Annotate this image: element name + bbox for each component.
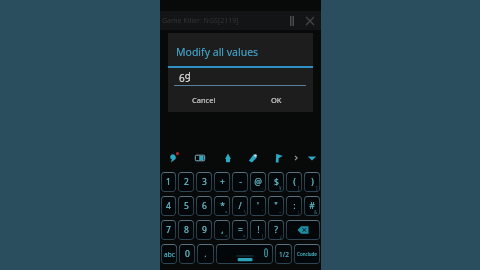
staticText: : — [293, 200, 296, 212]
button[interactable]: Pause — [284, 13, 300, 29]
button[interactable]: [ — [286, 172, 302, 192]
staticText: 0 — [185, 248, 190, 260]
staticText: / — [238, 200, 242, 212]
button[interactable]: Cancel — [168, 93, 240, 107]
staticText: & — [314, 209, 318, 215]
button[interactable]: \ — [232, 196, 248, 216]
staticText: ¿ — [280, 233, 282, 239]
button[interactable]: 1/2 — [275, 244, 292, 264]
staticText: 69 — [179, 71, 191, 85]
button[interactable]: Voice input — [166, 146, 179, 170]
button[interactable]: 9 — [196, 220, 212, 240]
staticText: 2 — [184, 176, 189, 188]
staticText: ) — [311, 176, 314, 188]
staticText: Modify all values — [176, 45, 259, 59]
staticText: = — [238, 224, 243, 236]
staticText: < — [225, 233, 228, 239]
staticText: | — [261, 233, 264, 239]
staticText: ~ — [279, 209, 282, 215]
button[interactable]: More — [289, 146, 302, 170]
staticText: × — [225, 209, 228, 215]
button[interactable]: Space — [216, 244, 273, 264]
button[interactable]: 8 — [178, 220, 194, 240]
button[interactable]: abc — [161, 244, 177, 264]
staticText: > — [243, 233, 246, 239]
button[interactable]: 1 — [161, 172, 176, 192]
staticText: 1 — [166, 176, 171, 188]
staticText: $ — [274, 176, 279, 188]
staticText: Game Killer: NGS[2119] — [162, 16, 239, 26]
staticText: ] — [316, 185, 318, 191]
button[interactable]: + — [214, 172, 230, 192]
button[interactable]: ¿ — [268, 220, 284, 240]
staticText: 4 — [166, 200, 171, 212]
staticText: 8 — [184, 224, 189, 236]
staticText: 5 — [184, 200, 189, 212]
staticText: \ — [244, 209, 246, 215]
staticText: abc — [164, 250, 175, 259]
staticText: 9 — [202, 224, 207, 236]
staticText: [ — [298, 185, 300, 191]
staticText: ¥ — [279, 185, 282, 191]
staticText: Cancel — [192, 95, 216, 105]
button[interactable]: OK — [240, 93, 313, 107]
staticText: · — [262, 185, 264, 191]
staticText: # — [309, 200, 315, 212]
button[interactable]: Clipboard — [193, 146, 206, 170]
button[interactable]: ` — [250, 196, 266, 216]
staticText: ` — [262, 209, 264, 215]
staticText: " — [274, 200, 278, 212]
button[interactable]: ] — [304, 172, 320, 192]
button[interactable]: 6 — [196, 196, 212, 216]
button[interactable]: Emoji — [221, 146, 234, 170]
button[interactable]: ~ — [268, 196, 284, 216]
staticText: 3 — [202, 176, 207, 188]
button[interactable]: > — [232, 220, 248, 240]
staticText: @ — [254, 176, 262, 188]
button[interactable]: Backspace — [286, 220, 320, 240]
staticText: ? — [274, 224, 278, 236]
staticText: OK — [271, 95, 282, 105]
staticText: _ — [244, 185, 246, 191]
button[interactable]: 2 — [178, 172, 194, 192]
staticText: + — [220, 176, 225, 188]
button[interactable]: 3 — [196, 172, 212, 192]
staticText: , — [221, 224, 224, 236]
button[interactable]: Translate — [272, 146, 285, 170]
staticText: ( — [293, 176, 296, 188]
staticText: 1/2 — [279, 250, 289, 259]
staticText: - — [239, 176, 242, 188]
button[interactable]: _ — [232, 172, 248, 192]
staticText: . — [204, 248, 207, 260]
button[interactable]: Conclude — [294, 244, 320, 264]
button[interactable]: < — [214, 220, 230, 240]
staticText: ; — [298, 209, 300, 215]
staticText: * — [220, 200, 225, 212]
button[interactable]: ; — [286, 196, 302, 216]
staticText: ' — [257, 200, 259, 212]
button[interactable]: 5 — [178, 196, 194, 216]
button[interactable]: 4 — [161, 196, 176, 216]
staticText: Conclude — [297, 251, 317, 257]
button[interactable]: 0 — [179, 244, 195, 264]
button[interactable]: · — [250, 172, 266, 192]
staticText: ! — [257, 224, 260, 236]
button[interactable]: . — [197, 244, 214, 264]
button[interactable]: Theme — [246, 146, 259, 170]
button[interactable]: Hide keyboard — [305, 146, 318, 170]
button[interactable]: × — [214, 196, 230, 216]
button[interactable]: & — [304, 196, 320, 216]
button[interactable]: Close — [302, 13, 318, 29]
staticText: 7 — [166, 224, 171, 236]
button[interactable]: Game Killer: NGS[2119] — [160, 11, 321, 30]
staticText: 6 — [202, 200, 207, 212]
button[interactable]: ¥ — [268, 172, 284, 192]
button[interactable]: 7 — [161, 220, 176, 240]
button[interactable]: | — [250, 220, 266, 240]
